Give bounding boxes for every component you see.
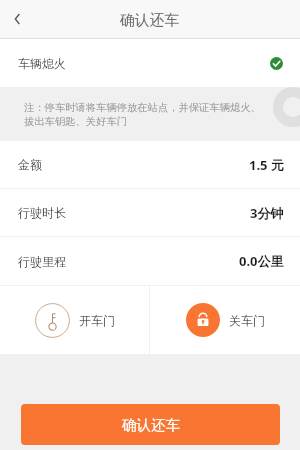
staticText: 开车门 xyxy=(79,313,115,328)
staticText: 0.0公里 xyxy=(239,252,284,270)
staticText: 行驶时长 xyxy=(18,205,66,220)
staticText: 行驶里程 xyxy=(18,254,66,269)
staticText: 关车门 xyxy=(229,313,265,328)
staticText: 3分钟 xyxy=(250,204,284,222)
staticText: 注：停车时请将车辆停放在站点，并保证车辆熄火、 xyxy=(24,101,261,114)
staticText: 金额 xyxy=(18,157,42,172)
button[interactable]: 确认还车 xyxy=(21,404,280,445)
staticText: 确认还车 xyxy=(122,416,180,434)
button[interactable]: 关车门 xyxy=(150,286,300,354)
staticText: 1.5 元 xyxy=(249,156,284,174)
staticText: 车辆熄火 xyxy=(18,56,66,71)
button[interactable]: 开车门 xyxy=(0,286,149,354)
staticText: 确认还车 xyxy=(120,11,180,30)
staticText: 拔出车钥匙、关好车门 xyxy=(24,115,127,128)
button[interactable]: Back xyxy=(0,0,38,38)
